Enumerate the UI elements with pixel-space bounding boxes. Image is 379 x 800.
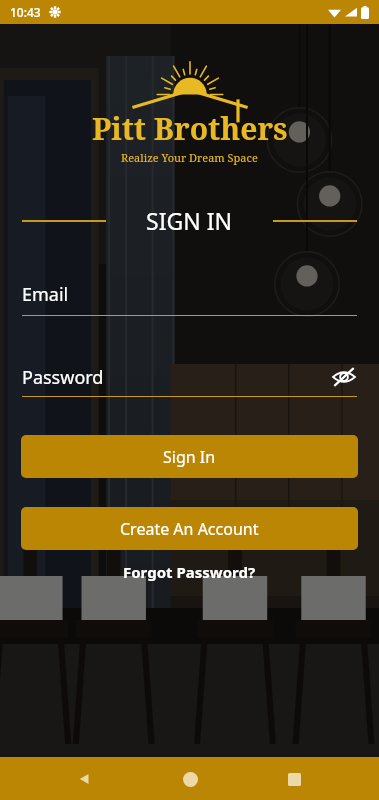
staticText: Sign In [163, 446, 216, 468]
staticText: SIGN IN [146, 205, 232, 236]
button[interactable]: Email [22, 282, 357, 316]
staticText: Email [22, 282, 69, 307]
button[interactable]: Home [170, 759, 210, 799]
staticText: Realize Your Dream Space [121, 150, 258, 165]
staticText: Create An Account [120, 518, 259, 540]
button[interactable]: Recents [274, 759, 314, 799]
button[interactable]: Create An Account [21, 507, 358, 550]
button[interactable]: Back [65, 759, 105, 799]
button[interactable]: Password [22, 364, 357, 397]
staticText: Pitt Brothers [92, 108, 288, 149]
button[interactable]: Forgot Password? [0, 562, 379, 582]
button[interactable]: Show password [331, 364, 357, 390]
button[interactable]: Sign In [21, 435, 358, 478]
staticText: Forgot Password? [123, 562, 256, 582]
staticText: 10:43 [10, 4, 41, 20]
staticText: Password [22, 365, 104, 390]
